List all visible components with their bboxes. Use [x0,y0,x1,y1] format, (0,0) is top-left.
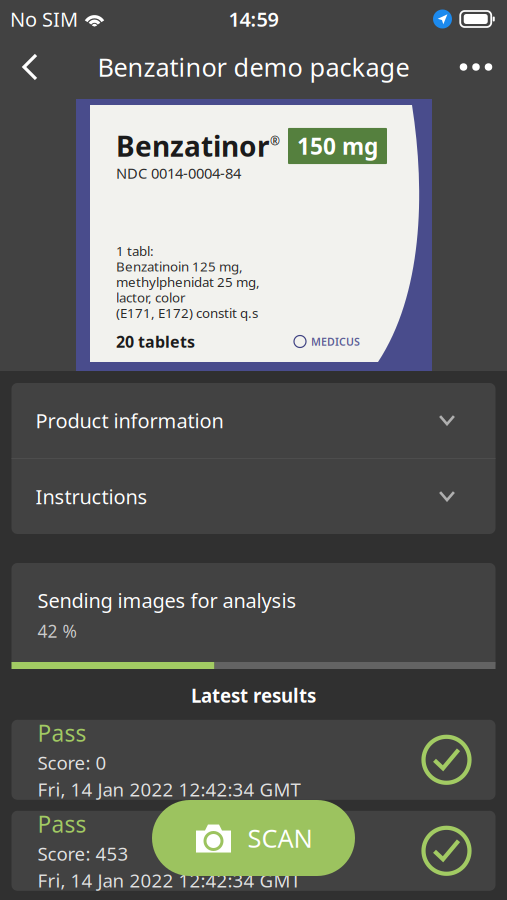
staticText: 20 tablets [116,331,195,352]
staticText: Sending images for analysis [37,587,296,614]
staticText: Product information [35,407,223,434]
staticText: 42 % [37,620,76,643]
staticText: Latest results [191,683,316,708]
staticText: lactor, color [116,288,186,306]
staticText: Fri, 14 Jan 2022 12:42:34 GMT [37,777,300,802]
staticText: Score: 0 [37,750,106,775]
staticText: 150 mg [297,131,378,161]
staticText: Benzatinor [116,127,270,165]
staticText: ® [270,133,280,149]
button[interactable]: SCAN [152,800,355,876]
button[interactable]: Instructions [11,459,495,534]
staticText: methylphenidat 25 mg, [116,273,260,291]
staticText: Instructions [35,483,147,510]
staticText: Pass [37,718,86,748]
staticText: MEDICUS [311,334,360,349]
staticText: NDC 0014-0004-84 [116,163,241,183]
staticText: 14:59 [228,6,278,32]
staticText: Score: 453 [37,841,128,866]
button[interactable]: Pass [11,720,495,800]
staticText: Benzatinor demo package [97,50,409,84]
button[interactable]: Product information [11,383,495,458]
button[interactable]: More options [445,38,507,96]
button[interactable]: Back [0,38,60,96]
staticText: Pass [37,809,86,839]
staticText: 1 tabl: [116,242,154,260]
staticText: Fri, 14 Jan 2022 12:42:34 GMT [37,868,300,893]
staticText: No SIM [10,6,78,32]
staticText: SCAN [247,821,312,855]
button[interactable]: Pass [11,811,495,891]
staticText: (E171, E172) constit q.s [116,304,258,322]
staticText: Benzatinoin 125 mg, [116,257,243,275]
